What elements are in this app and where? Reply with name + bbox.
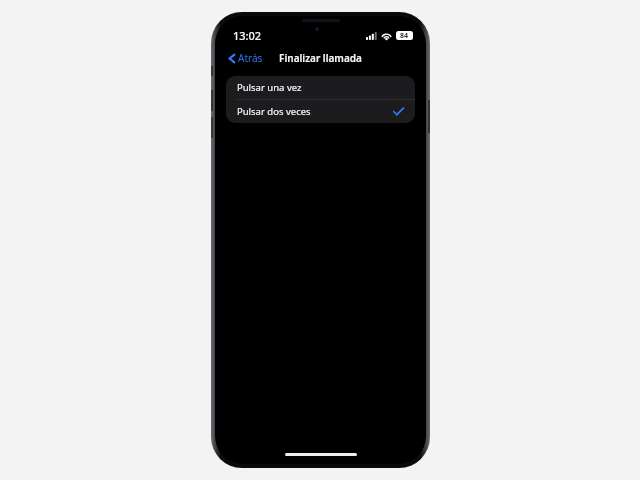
button[interactable]: Pulsar dos veces (226, 100, 415, 123)
button[interactable]: Pulsar una vez (226, 76, 415, 99)
other: Seleccionado (393, 107, 404, 116)
button[interactable]: Atrás (225, 49, 266, 67)
staticText: 13:02 (233, 28, 262, 43)
staticText: Pulsar una vez (237, 81, 302, 94)
staticText: Pulsar dos veces (237, 105, 311, 118)
staticText: Finalizar llamada (279, 51, 362, 65)
staticText: Atrás (238, 51, 263, 65)
staticText: 84 (400, 31, 409, 40)
